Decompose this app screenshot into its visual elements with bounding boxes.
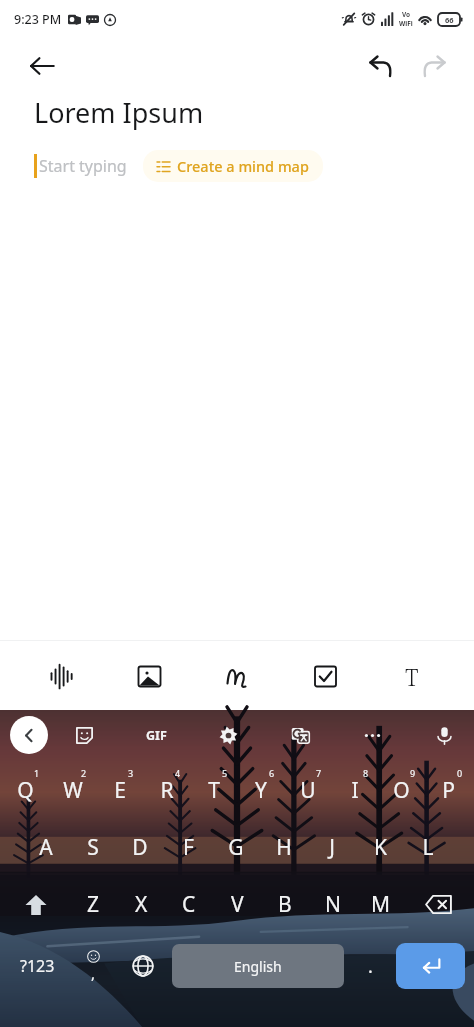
staticText: 66 bbox=[445, 15, 454, 25]
button[interactable]: GIF bbox=[136, 715, 176, 755]
staticText: ?123 bbox=[20, 955, 55, 977]
button[interactable]: Shift bbox=[2, 876, 69, 933]
button[interactable]: Z bbox=[69, 876, 117, 933]
button[interactable]: D bbox=[116, 819, 164, 876]
staticText: S bbox=[87, 833, 99, 862]
staticText: Create a mind map bbox=[177, 156, 309, 176]
button[interactable]: N bbox=[309, 876, 357, 933]
staticText: 3 bbox=[128, 767, 134, 779]
button[interactable]: O bbox=[378, 762, 425, 819]
staticText: GIF bbox=[146, 727, 167, 744]
button[interactable]: Audio recording bbox=[36, 650, 88, 702]
button[interactable]: Create a mind map bbox=[143, 150, 323, 182]
staticText: English bbox=[234, 957, 282, 976]
button[interactable]: Back bbox=[20, 44, 64, 88]
button[interactable]: Text format bbox=[386, 650, 438, 702]
button[interactable]: C bbox=[165, 876, 213, 933]
staticText: G bbox=[228, 833, 244, 862]
button[interactable]: X bbox=[117, 876, 165, 933]
staticText: Y bbox=[255, 776, 267, 805]
staticText: C bbox=[182, 890, 196, 919]
staticText: M bbox=[371, 890, 391, 919]
button[interactable]: F bbox=[164, 819, 212, 876]
staticText: V bbox=[231, 890, 244, 919]
staticText: 1 bbox=[34, 767, 40, 779]
button[interactable]: E bbox=[96, 762, 143, 819]
button[interactable]: Keyboard settings bbox=[208, 715, 248, 755]
button[interactable]: Q bbox=[2, 762, 49, 819]
button[interactable]: More options bbox=[352, 715, 392, 755]
staticText: R bbox=[160, 776, 174, 805]
staticText: 8 bbox=[363, 767, 369, 779]
button[interactable]: I bbox=[331, 762, 378, 819]
staticText: . bbox=[368, 954, 373, 979]
button[interactable]: Translate bbox=[280, 715, 320, 755]
staticText: A bbox=[39, 833, 53, 862]
button[interactable]: . bbox=[348, 933, 393, 999]
button[interactable]: H bbox=[260, 819, 308, 876]
staticText: H bbox=[276, 833, 292, 862]
staticText: U bbox=[300, 776, 316, 805]
staticText: Start typing bbox=[39, 155, 127, 177]
button[interactable]: L bbox=[404, 819, 452, 876]
button[interactable]: Stickers bbox=[64, 715, 104, 755]
staticText: D bbox=[132, 833, 148, 862]
staticText: 0 bbox=[457, 767, 463, 779]
staticText: , bbox=[91, 963, 96, 983]
button[interactable]: Emoji and comma bbox=[68, 933, 118, 999]
button[interactable]: V bbox=[213, 876, 261, 933]
button[interactable]: U bbox=[284, 762, 331, 819]
staticText: Q bbox=[17, 776, 34, 805]
button[interactable]: Checklist bbox=[299, 650, 351, 702]
staticText: 7 bbox=[316, 767, 322, 779]
staticText: X bbox=[135, 890, 148, 919]
button[interactable]: English bbox=[172, 944, 344, 988]
staticText: 5 bbox=[222, 767, 228, 779]
button[interactable]: T bbox=[190, 762, 237, 819]
staticText: T bbox=[208, 776, 220, 805]
button[interactable]: S bbox=[69, 819, 116, 876]
staticText: 4 bbox=[175, 767, 181, 779]
button[interactable]: B bbox=[261, 876, 309, 933]
button[interactable]: Backspace bbox=[405, 876, 472, 933]
button[interactable]: Enter bbox=[396, 943, 465, 989]
button[interactable]: Voice input bbox=[424, 715, 464, 755]
staticText: Z bbox=[87, 890, 100, 919]
button[interactable]: P bbox=[425, 762, 472, 819]
staticText: W bbox=[63, 776, 83, 805]
staticText: E bbox=[114, 776, 126, 805]
staticText: Lorem Ipsum bbox=[34, 94, 204, 131]
button[interactable]: Insert image bbox=[123, 650, 175, 702]
staticText: 2 bbox=[81, 767, 87, 779]
button[interactable]: W bbox=[49, 762, 96, 819]
button[interactable]: Close keyboard toolbar bbox=[10, 716, 48, 754]
staticText: N bbox=[325, 890, 341, 919]
staticText: 9 bbox=[410, 767, 416, 779]
button[interactable]: M bbox=[357, 876, 405, 933]
staticText: I bbox=[351, 776, 359, 805]
staticText: 9:23 PM bbox=[14, 11, 62, 28]
button[interactable]: A bbox=[22, 819, 69, 876]
staticText: L bbox=[422, 833, 434, 862]
staticText: O bbox=[393, 776, 410, 805]
button[interactable]: Change language bbox=[118, 933, 168, 999]
staticText: F bbox=[183, 833, 194, 862]
button[interactable]: ?123 bbox=[6, 933, 68, 999]
button[interactable]: G bbox=[212, 819, 260, 876]
button[interactable]: Undo bbox=[358, 44, 402, 88]
staticText: P bbox=[442, 776, 455, 805]
staticText: B bbox=[278, 890, 292, 919]
button[interactable]: Y bbox=[237, 762, 284, 819]
button[interactable]: J bbox=[308, 819, 356, 876]
staticText: Vo bbox=[402, 10, 411, 19]
staticText: J bbox=[329, 833, 335, 862]
button[interactable]: Redo bbox=[412, 44, 456, 88]
button[interactable]: R bbox=[143, 762, 190, 819]
staticText: K bbox=[374, 833, 387, 862]
button[interactable]: K bbox=[356, 819, 404, 876]
button[interactable]: Handwriting bbox=[211, 650, 263, 702]
staticText: 6 bbox=[269, 767, 275, 779]
staticText: WiFi bbox=[399, 19, 413, 28]
staticText: T bbox=[405, 661, 419, 692]
